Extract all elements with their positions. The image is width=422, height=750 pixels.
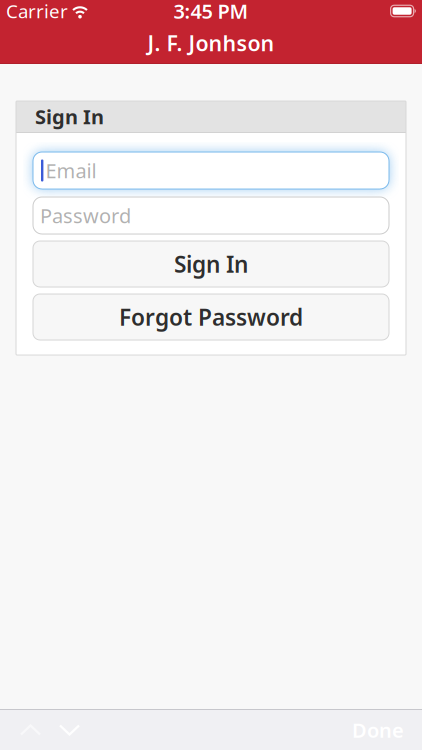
staticText: Password <box>40 202 131 229</box>
button[interactable]: Sign In <box>33 241 389 287</box>
button[interactable]: Next field <box>59 724 80 735</box>
staticText: Done <box>352 717 404 743</box>
staticText: Sign In <box>174 249 248 279</box>
staticText: Carrier <box>6 0 68 23</box>
button[interactable]: Forgot Password <box>33 294 389 340</box>
staticText: J. F. Jonhson <box>147 29 274 57</box>
staticText: 3:45 PM <box>173 0 248 24</box>
button[interactable]: Previous field <box>20 724 41 735</box>
staticText: Sign In <box>35 103 104 130</box>
staticText: Email <box>45 157 96 184</box>
staticText: Forgot Password <box>119 302 303 332</box>
button[interactable]: Done <box>352 717 404 743</box>
